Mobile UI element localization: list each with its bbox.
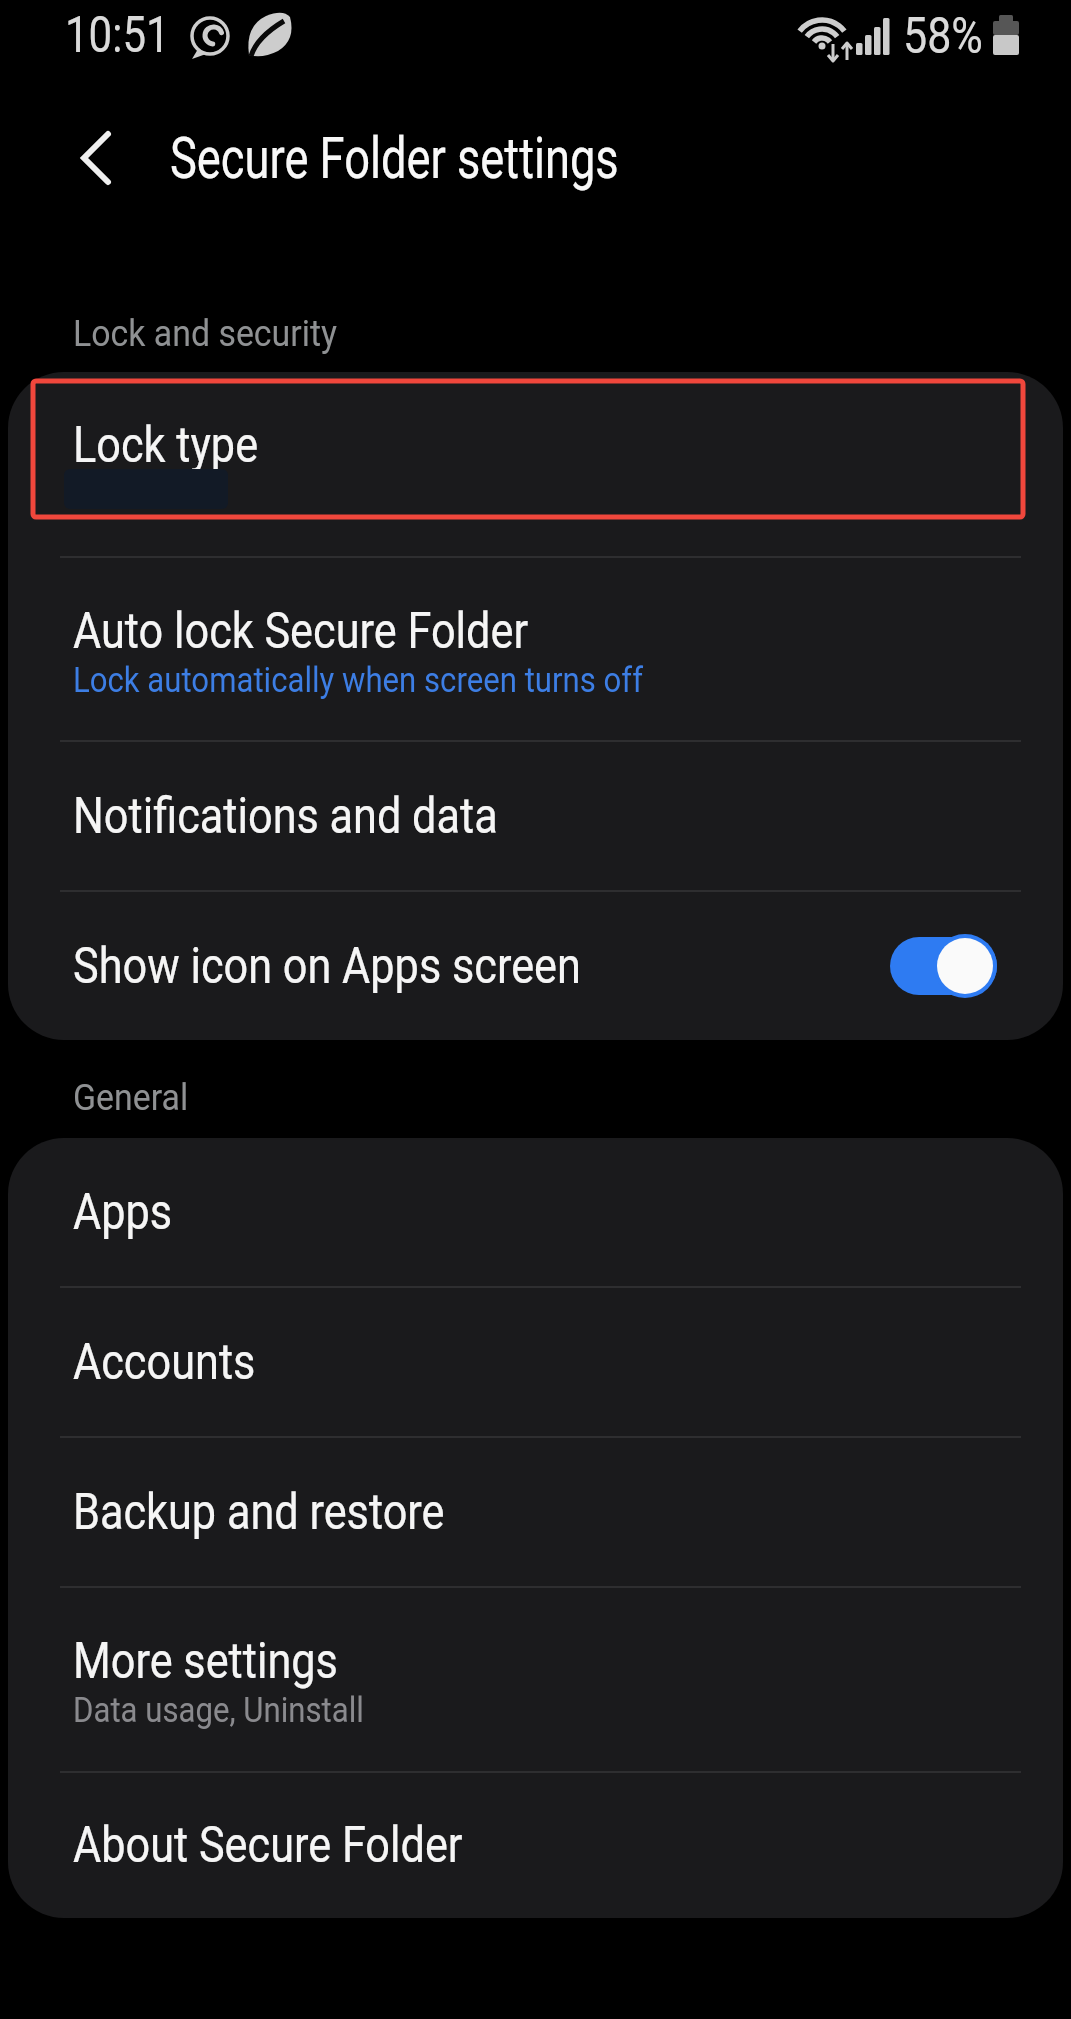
staticText: Auto lock Secure Folder (73, 602, 529, 661)
staticText: General (73, 1076, 188, 1119)
staticText: Backup and restore (73, 1483, 445, 1542)
staticText: Notifications and data (73, 787, 498, 846)
staticText: Lock automatically when screen turns off (73, 660, 643, 701)
button[interactable]: About Secure Folder (8, 1773, 1063, 1918)
staticText: Lock type (73, 416, 258, 475)
button[interactable]: More settings (8, 1588, 1063, 1771)
button[interactable]: Auto lock Secure Folder (8, 558, 1063, 740)
staticText: Data usage, Uninstall (73, 1690, 364, 1731)
button[interactable]: Accounts (8, 1288, 1063, 1436)
staticText: 10:51 (65, 6, 170, 65)
staticText: Lock and security (73, 312, 337, 355)
staticText: Accounts (73, 1333, 255, 1392)
staticText: 58% (903, 7, 983, 66)
button[interactable]: Apps (8, 1138, 1063, 1286)
button[interactable]: Lock type (8, 372, 1063, 556)
button[interactable]: Notifications and data (8, 742, 1063, 890)
button[interactable]: Show icon on Apps screen (8, 892, 1063, 1040)
button[interactable]: Backup and restore (8, 1438, 1063, 1586)
staticText: Apps (73, 1183, 172, 1242)
staticText: Secure Folder settings (170, 124, 619, 192)
staticText: About Secure Folder (73, 1816, 463, 1875)
button[interactable] (60, 124, 128, 192)
staticText: Show icon on Apps screen (73, 937, 582, 996)
staticText: More settings (73, 1632, 339, 1691)
